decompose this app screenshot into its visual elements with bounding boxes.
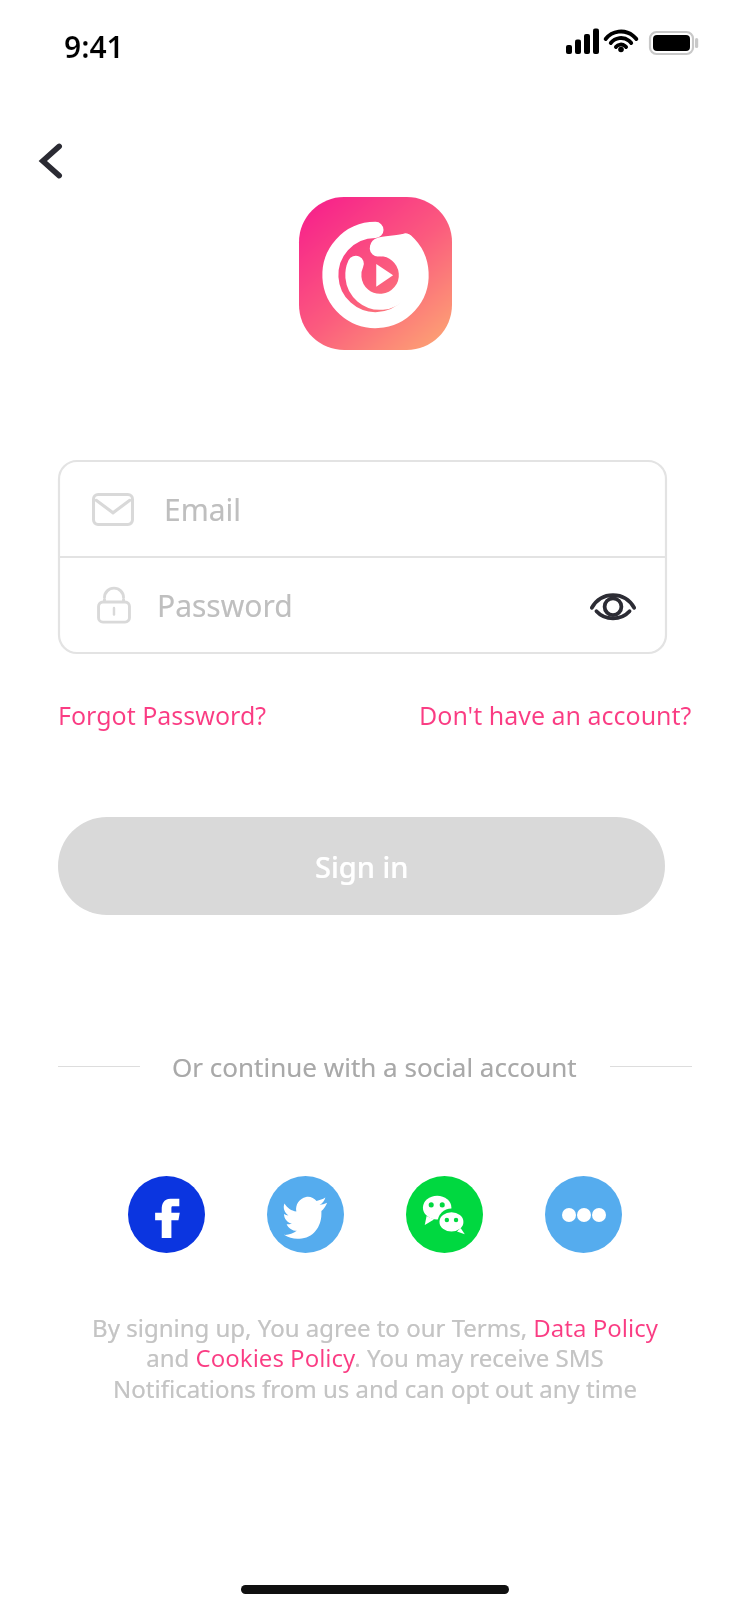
staticText: Password [157,585,293,626]
button[interactable]: Sign in with Facebook [128,1176,205,1253]
staticText: Don't have an account? [419,698,692,732]
staticText: By signing up, You agree to our Terms, D… [85,1311,665,1405]
button[interactable]: Sign in with WeChat [406,1176,483,1253]
button[interactable]: Sign in with Twitter [267,1176,344,1253]
button[interactable]: Back [20,130,82,192]
staticText: Email [164,489,242,530]
staticText: Sign in [315,847,409,886]
button[interactable]: Email [59,461,666,557]
button[interactable]: Sign in [58,817,665,915]
button[interactable]: More sign in options [545,1176,622,1253]
staticText: Forgot Password? [58,698,267,732]
button[interactable]: Don't have an account? [419,698,692,732]
button[interactable]: Password [59,557,666,653]
staticText: 9:41 [64,26,124,67]
staticText: Or continue with a social account [172,1049,577,1084]
button[interactable]: Forgot Password? [58,698,267,732]
button[interactable]: Show password [577,569,649,641]
